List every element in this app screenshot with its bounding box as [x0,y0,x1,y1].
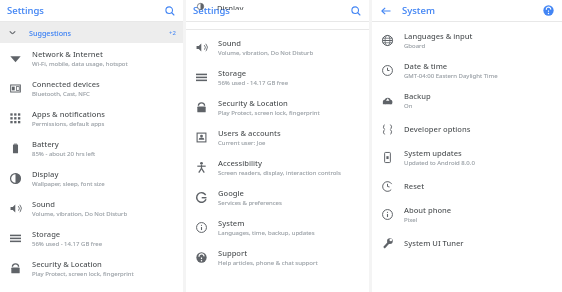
button[interactable]: Security & Location [0,253,183,283]
staticText: Bluetooth, Cast, NFC [32,90,90,98]
button[interactable]: Date & time [372,55,562,85]
button[interactable]: Sound [0,193,183,223]
staticText: On [404,102,413,110]
staticText: Sound [218,38,242,48]
staticText: 56% used - 14.17 GB free [32,240,103,248]
staticText: 56% used - 14.17 GB free [218,79,289,87]
button[interactable]: Support [186,242,369,272]
button[interactable]: Search [162,3,177,18]
staticText: Reset [404,181,425,191]
button[interactable]: Storage [186,62,369,92]
staticText: Play Protect, screen lock, fingerprint [218,109,320,117]
staticText: Developer options [404,124,471,134]
staticText: GMT-04:00 Eastern Daylight Time [404,72,498,80]
button[interactable]: System UI Tuner [372,229,562,256]
button[interactable]: Apps & notifications [0,103,183,133]
staticText: Users & accounts [218,128,281,138]
staticText: System [218,218,245,228]
staticText: About phone [404,205,452,215]
button[interactable]: Users & accounts [186,122,369,152]
staticText: 85% - about 20 hrs left [32,150,96,158]
staticText: Google [218,188,244,198]
staticText: Wallpaper, sleep, font size [32,180,105,188]
button[interactable]: Suggestions [0,22,183,43]
button[interactable]: Back [378,3,393,18]
staticText: Updated to Android 8.0.0 [404,159,475,167]
staticText: Gboard [404,42,426,50]
button[interactable]: Accessibility [186,152,369,182]
button[interactable]: Google [186,182,369,212]
staticText: Screen readers, display, interaction con… [218,169,341,177]
button[interactable]: Backup [372,85,562,115]
staticText: System UI Tuner [404,238,464,248]
button[interactable]: Sound [186,32,369,62]
staticText: Services & preferences [218,199,282,207]
staticText: Permissions, default apps [32,120,105,128]
staticText: Settings [7,4,44,17]
staticText: Date & time [404,61,448,71]
staticText: System [402,4,435,17]
staticText: Backup [404,91,431,101]
button[interactable]: Security & Location [186,92,369,122]
button[interactable]: Search [348,3,363,18]
button[interactable]: Storage [0,223,183,253]
button[interactable]: Battery [0,133,183,163]
staticText: Languages, time, backup, updates [218,229,315,237]
staticText: Battery [32,139,59,149]
button[interactable]: Help [541,3,556,18]
staticText: Settings [193,4,230,17]
button[interactable]: Connected devices [0,73,183,103]
staticText: Wi-Fi, mobile, data usage, hotspot [32,60,128,68]
staticText: Support [218,248,248,258]
staticText: Apps & notifications [32,109,105,119]
staticText: Help articles, phone & chat support [218,259,318,267]
button[interactable]: Network & Internet [0,43,183,73]
staticText: Languages & input [404,31,473,41]
staticText: Play Protect, screen lock, fingerprint [32,270,134,278]
button[interactable]: Reset [372,172,562,199]
staticText: Security & Location [32,259,102,269]
staticText: Security & Location [218,98,288,108]
staticText: Accessibility [218,158,262,168]
button[interactable]: About phone [372,199,562,229]
staticText: Display [32,169,59,179]
staticText: Storage [32,229,61,239]
staticText: System updates [404,148,462,158]
staticText: Storage [218,68,247,78]
staticText: Pixel [404,216,418,224]
staticText: Network & Internet [32,49,103,59]
staticText: +2 [169,29,176,37]
staticText: Sound [32,199,56,209]
staticText: Connected devices [32,79,100,89]
button[interactable]: System updates [372,142,562,172]
staticText: Suggestions [29,28,72,38]
button[interactable]: Developer options [372,115,562,142]
staticText: Volume, vibration, Do Not Disturb [218,49,314,57]
button[interactable]: System [186,212,369,242]
staticText: Volume, vibration, Do Not Disturb [32,210,128,218]
staticText: Display [217,3,244,10]
staticText: Current user: Joe [218,139,266,147]
button[interactable]: Languages & input [372,25,562,55]
button[interactable]: Display [0,163,183,193]
